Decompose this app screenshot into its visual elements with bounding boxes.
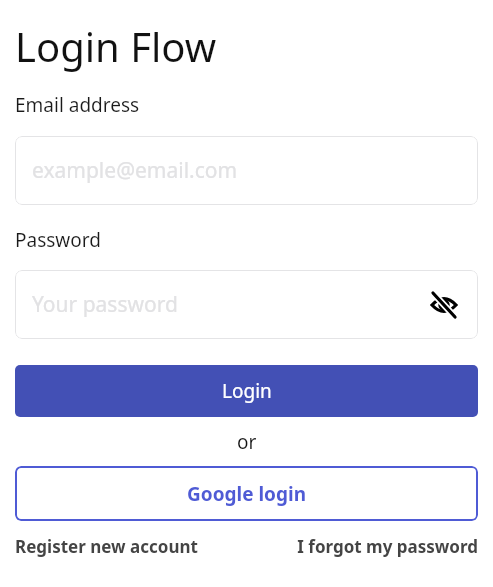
staticText: Email address — [15, 92, 140, 118]
button[interactable]: I forgot my password — [297, 535, 478, 558]
staticText: Your password — [32, 290, 178, 319]
staticText: or — [237, 429, 257, 455]
staticText: Login Flow — [15, 19, 217, 73]
staticText: I forgot my password — [297, 535, 478, 558]
staticText: Google login — [187, 481, 307, 507]
staticText: example@email.com — [32, 156, 238, 185]
button[interactable]: Login — [15, 365, 478, 417]
button[interactable]: Show password — [427, 288, 461, 322]
button[interactable]: example@email.com — [15, 136, 478, 205]
button[interactable]: Your password — [15, 270, 478, 339]
staticText: Password — [15, 227, 101, 253]
button[interactable]: Google login — [15, 466, 478, 521]
button[interactable]: Register new account — [15, 535, 198, 558]
staticText: Login — [222, 378, 272, 404]
staticText: Register new account — [15, 535, 198, 558]
